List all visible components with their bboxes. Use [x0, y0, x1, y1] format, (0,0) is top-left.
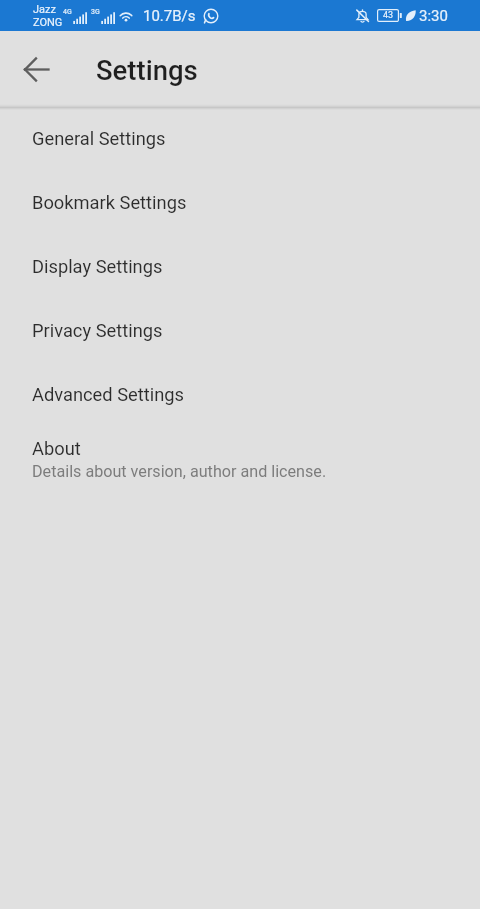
staticText: 3:30: [419, 7, 448, 25]
button[interactable]: About: [0, 427, 480, 491]
staticText: Settings: [96, 54, 198, 86]
button[interactable]: Bookmark Settings: [0, 171, 480, 235]
staticText: 3G: [91, 8, 100, 16]
staticText: About: [32, 438, 81, 459]
staticText: Jazz: [33, 3, 56, 16]
staticText: 4G: [63, 8, 72, 16]
staticText: Advanced Settings: [32, 384, 184, 405]
staticText: Bookmark Settings: [32, 192, 187, 213]
staticText: ZONG: [33, 16, 63, 29]
staticText: 10.7B/s: [143, 7, 196, 25]
button[interactable]: Display Settings: [0, 235, 480, 299]
button[interactable]: Navigate up: [12, 45, 60, 93]
button[interactable]: Privacy Settings: [0, 299, 480, 363]
button[interactable]: Advanced Settings: [0, 363, 480, 427]
staticText: Display Settings: [32, 256, 163, 277]
staticText: 43: [383, 10, 394, 21]
staticText: Details about version, author and licens…: [32, 462, 327, 481]
button[interactable]: General Settings: [0, 107, 480, 171]
staticText: General Settings: [32, 128, 166, 149]
staticText: Privacy Settings: [32, 320, 163, 341]
